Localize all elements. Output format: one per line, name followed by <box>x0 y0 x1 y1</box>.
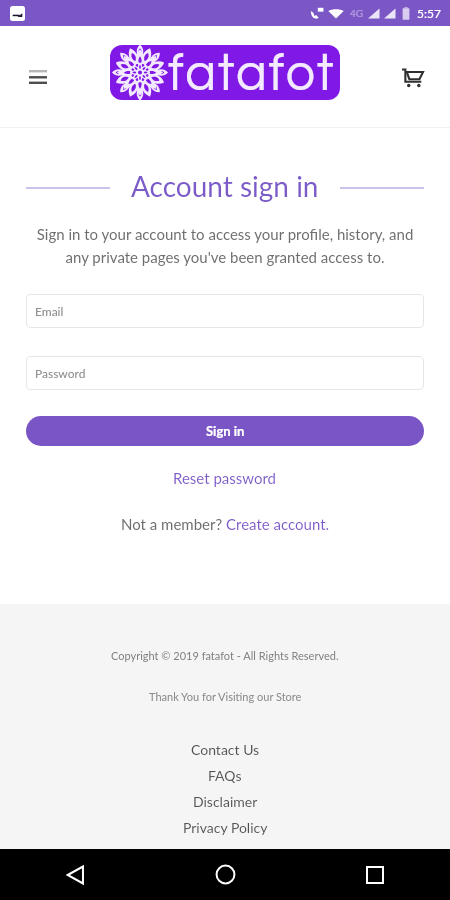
staticText: FAQs <box>208 767 242 784</box>
staticText: Email <box>35 304 64 318</box>
button[interactable]: Recent apps <box>300 849 450 900</box>
button[interactable]: Home <box>150 849 300 900</box>
button[interactable]: fatafot <box>110 45 340 100</box>
button[interactable]: Sign in <box>26 416 424 446</box>
staticText: Sign in to your account to access your p… <box>30 225 420 266</box>
button[interactable]: Password <box>26 356 424 390</box>
staticText: fatafot <box>168 47 336 100</box>
staticText: Password <box>35 366 86 380</box>
staticText: Copyright © 2019 fatafot - All Rights Re… <box>111 649 339 662</box>
button[interactable]: Privacy Policy <box>0 814 450 840</box>
staticText: 5:57 <box>417 6 441 20</box>
button[interactable]: Reset password <box>163 464 287 492</box>
button[interactable]: Back <box>0 849 150 900</box>
staticText: 4G <box>350 7 364 19</box>
button[interactable]: Contact Us <box>0 736 450 762</box>
staticText: Contact Us <box>191 741 260 758</box>
button[interactable]: Open navigation menu <box>17 56 59 98</box>
button[interactable]: Email <box>26 294 424 328</box>
button[interactable]: FAQs <box>0 762 450 788</box>
staticText: Privacy Policy <box>183 819 268 836</box>
button[interactable]: Shopping cart <box>391 56 433 98</box>
staticText: Account sign in <box>131 169 319 203</box>
staticText: Thank You for Visiting our Store <box>149 690 302 703</box>
button[interactable]: Not a member? Create account. <box>111 510 340 538</box>
staticText: Sign in <box>206 423 245 439</box>
staticText: Disclaimer <box>193 793 258 810</box>
button[interactable]: Disclaimer <box>0 788 450 814</box>
